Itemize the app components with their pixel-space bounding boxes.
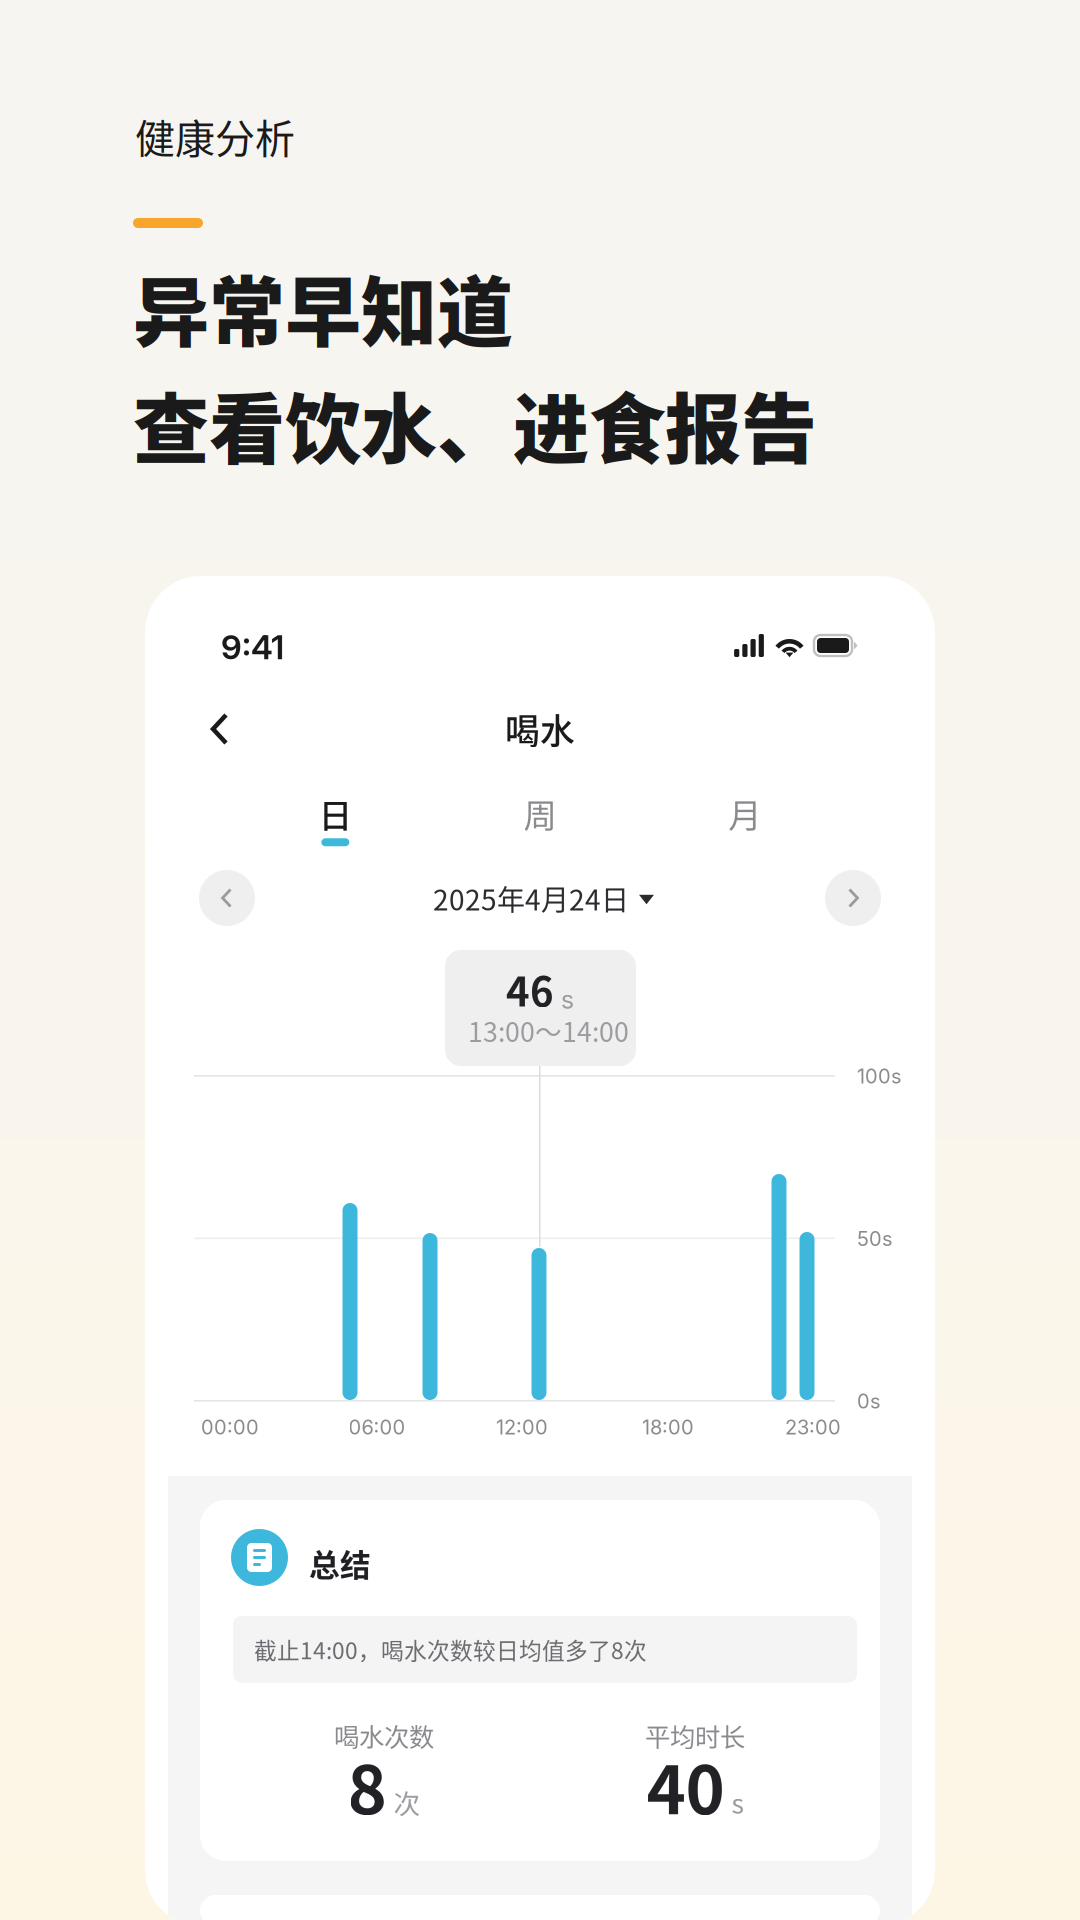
button[interactable]: 日: [233, 785, 438, 850]
staticText: 月: [728, 789, 761, 837]
staticText: 40: [646, 1737, 724, 1833]
staticText: 周: [523, 789, 556, 837]
button[interactable]: 2025年4月24日: [427, 872, 660, 924]
staticText: 06:00: [348, 1415, 405, 1439]
staticText: 总结: [309, 1541, 371, 1585]
staticText: 50s: [857, 1226, 892, 1251]
staticText: 截止14:00，喝水次数较日均值多了8次: [254, 1633, 647, 1666]
button[interactable]: Previous day: [199, 870, 255, 926]
staticText: 异常早知道: [133, 252, 513, 362]
staticText: 12:00: [496, 1415, 548, 1439]
staticText: s: [731, 1783, 743, 1821]
staticText: 46: [506, 960, 554, 1018]
staticText: 次: [393, 1783, 420, 1821]
staticText: 健康分析: [135, 107, 295, 165]
staticText: 0s: [857, 1389, 880, 1413]
staticText: 9:41: [221, 627, 284, 667]
button[interactable]: Back: [196, 701, 243, 757]
staticText: 18:00: [642, 1415, 694, 1439]
staticText: 查看饮水、进食报告: [133, 369, 817, 479]
staticText: 日: [319, 789, 352, 837]
staticText: 100s: [857, 1064, 901, 1088]
staticText: 喝水次数: [334, 1717, 434, 1754]
staticText: 00:00: [201, 1415, 259, 1439]
button[interactable]: 月: [642, 785, 847, 850]
button[interactable]: 周: [438, 785, 642, 850]
staticText: 23:00: [785, 1415, 841, 1439]
staticText: 喝水: [505, 704, 575, 754]
staticText: 13:00～14:00: [468, 1011, 629, 1050]
staticText: 2025年4月24日: [433, 878, 629, 918]
staticText: 8: [347, 1737, 386, 1833]
button[interactable]: Next day: [825, 870, 881, 926]
staticText: 平均时长: [645, 1717, 745, 1754]
staticText: s: [561, 984, 574, 1015]
